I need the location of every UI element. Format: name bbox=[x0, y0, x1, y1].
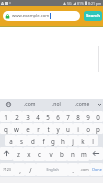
staticText: 9 bbox=[86, 113, 90, 121]
button[interactable]: Keyboard settings bbox=[0, 99, 16, 110]
staticText: z bbox=[17, 150, 20, 158]
staticText: 0 bbox=[96, 113, 100, 121]
button[interactable]: s bbox=[16, 135, 27, 146]
button[interactable]: , bbox=[14, 163, 25, 176]
staticText: m bbox=[81, 150, 87, 158]
button[interactable]: 9 bbox=[83, 111, 93, 122]
button[interactable]: f bbox=[38, 135, 48, 146]
staticText: r bbox=[37, 125, 40, 133]
button[interactable]: g bbox=[48, 135, 58, 146]
staticText: 8:21 pm bbox=[88, 1, 102, 6]
staticText: w bbox=[14, 125, 19, 133]
staticText: 1 bbox=[4, 113, 8, 121]
button[interactable]: r bbox=[33, 123, 43, 134]
staticText: www.example.com bbox=[12, 13, 50, 19]
button[interactable]: Shift bbox=[0, 147, 13, 160]
staticText: Done bbox=[92, 167, 102, 172]
button[interactable]: j bbox=[68, 135, 78, 146]
staticText: e bbox=[26, 125, 30, 133]
staticText: h bbox=[61, 137, 65, 145]
button[interactable]: 5 bbox=[43, 111, 53, 122]
button[interactable]: 7 bbox=[63, 111, 73, 122]
button[interactable]: Backspace bbox=[89, 147, 103, 160]
button[interactable]: h bbox=[58, 135, 68, 146]
staticText: g bbox=[51, 137, 55, 145]
staticText: 81% bbox=[77, 1, 84, 6]
button[interactable]: ?123 bbox=[0, 163, 14, 176]
button[interactable]: m bbox=[78, 147, 89, 161]
staticText: v bbox=[49, 150, 53, 158]
staticText: . bbox=[72, 166, 74, 174]
button[interactable]: k bbox=[78, 135, 88, 146]
button[interactable]: b bbox=[56, 147, 67, 161]
button[interactable]: . bbox=[68, 163, 78, 176]
button[interactable]: c bbox=[34, 147, 45, 161]
staticText: / bbox=[29, 166, 32, 174]
button[interactable]: u bbox=[63, 123, 73, 134]
button[interactable]: 6 bbox=[53, 111, 63, 122]
button[interactable]: i bbox=[73, 123, 83, 134]
button[interactable]: Done bbox=[90, 163, 103, 176]
button[interactable]: www.example.com bbox=[3, 11, 80, 21]
button[interactable]: .nol bbox=[43, 99, 69, 110]
staticText: p bbox=[96, 125, 100, 133]
button[interactable]: v bbox=[45, 147, 56, 161]
staticText: q bbox=[4, 125, 8, 133]
staticText: l bbox=[92, 137, 94, 145]
button[interactable]: d bbox=[27, 135, 38, 146]
staticText: k bbox=[81, 137, 85, 145]
staticText: .com bbox=[80, 167, 89, 172]
button[interactable]: 3 bbox=[22, 111, 33, 122]
button[interactable]: w bbox=[11, 123, 22, 134]
staticText: y bbox=[56, 125, 60, 133]
button[interactable]: n bbox=[67, 147, 78, 161]
button[interactable]: e bbox=[22, 123, 33, 134]
staticText: 4 bbox=[36, 113, 40, 121]
button[interactable]: o bbox=[83, 123, 93, 134]
staticText: 3 bbox=[26, 113, 30, 121]
button[interactable]: l bbox=[88, 135, 98, 146]
staticText: b bbox=[60, 150, 64, 158]
button[interactable]: q bbox=[0, 123, 11, 134]
staticText: x bbox=[27, 150, 31, 158]
staticText: , bbox=[19, 166, 21, 174]
staticText: 2 bbox=[15, 113, 19, 121]
button[interactable]: / bbox=[25, 163, 36, 176]
staticText: 7 bbox=[66, 113, 70, 121]
button[interactable]: x bbox=[23, 147, 34, 161]
button[interactable]: More suggestions bbox=[95, 99, 103, 110]
staticText: .come bbox=[75, 101, 90, 108]
staticText: English bbox=[46, 167, 59, 172]
button[interactable]: 4 bbox=[33, 111, 43, 122]
staticText: 5G bbox=[67, 1, 72, 6]
button[interactable]: z bbox=[13, 147, 23, 161]
button[interactable]: .come bbox=[69, 99, 95, 110]
button[interactable]: a bbox=[5, 135, 16, 146]
button[interactable]: t bbox=[43, 123, 53, 134]
staticText: i bbox=[77, 125, 79, 133]
button[interactable]: 8 bbox=[73, 111, 83, 122]
staticText: .com bbox=[24, 101, 36, 108]
staticText: u bbox=[66, 125, 70, 133]
staticText: f bbox=[42, 137, 45, 145]
button[interactable]: 1 bbox=[0, 111, 11, 122]
button[interactable]: .com bbox=[16, 99, 43, 110]
staticText: t bbox=[47, 125, 50, 133]
staticText: c bbox=[38, 150, 41, 158]
staticText: n bbox=[71, 150, 75, 158]
staticText: Search bbox=[86, 13, 100, 19]
button[interactable]: p bbox=[93, 123, 103, 134]
button[interactable]: 2 bbox=[11, 111, 22, 122]
staticText: 5 bbox=[46, 113, 50, 121]
button[interactable]: English bbox=[36, 163, 68, 176]
button[interactable]: .com bbox=[78, 163, 90, 176]
button[interactable]: Search bbox=[84, 11, 102, 21]
button[interactable]: y bbox=[53, 123, 63, 134]
staticText: o bbox=[86, 125, 90, 133]
staticText: ?123 bbox=[3, 167, 11, 172]
staticText: s bbox=[20, 137, 23, 145]
staticText: j bbox=[72, 137, 74, 145]
button[interactable]: 0 bbox=[93, 111, 103, 122]
staticText: 8 bbox=[76, 113, 80, 121]
staticText: a bbox=[9, 137, 13, 145]
